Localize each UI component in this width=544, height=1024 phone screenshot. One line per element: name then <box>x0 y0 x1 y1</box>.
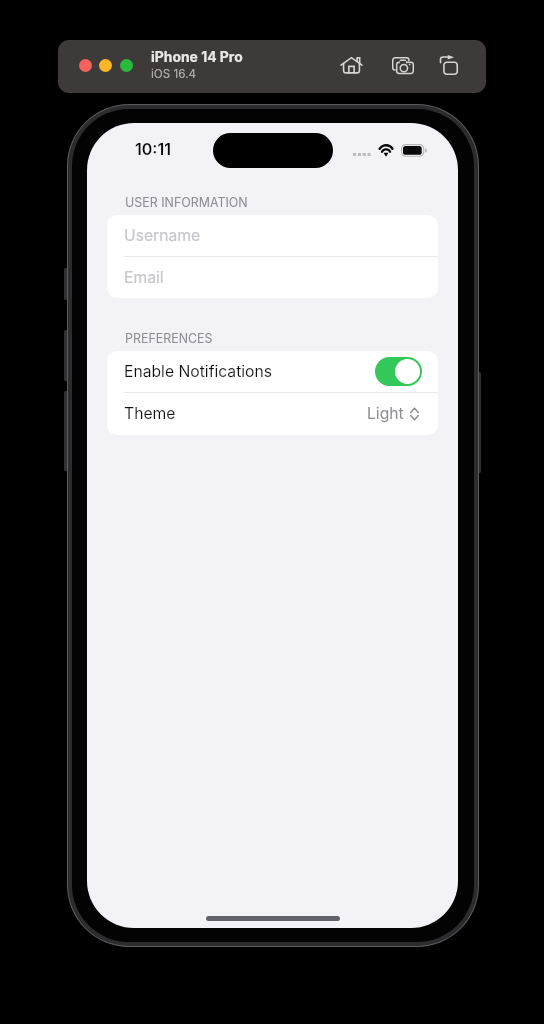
button[interactable]: Screenshot <box>390 53 416 79</box>
button[interactable]: Rotate <box>436 53 460 77</box>
staticText: iOS 16.4 <box>151 67 197 81</box>
button[interactable]: Email <box>107 257 438 298</box>
staticText: Theme <box>124 404 176 423</box>
button[interactable]: Home <box>339 53 363 77</box>
staticText: iPhone 14 Pro <box>151 49 243 66</box>
staticText: PREFERENCES <box>125 331 213 346</box>
button[interactable]: Minimise window <box>99 59 112 72</box>
staticText: 10:11 <box>135 139 171 158</box>
button[interactable]: Enable Notifications <box>107 351 438 392</box>
button[interactable]: Zoom window <box>120 59 133 72</box>
button[interactable]: Theme <box>107 393 438 434</box>
staticText: Username <box>124 226 201 245</box>
staticText: Email <box>124 268 164 287</box>
button[interactable]: Close window <box>79 59 92 72</box>
staticText: USER INFORMATION <box>125 195 248 210</box>
staticText: Enable Notifications <box>124 362 273 381</box>
staticText: Light <box>367 404 404 423</box>
button[interactable]: Username <box>107 215 438 256</box>
